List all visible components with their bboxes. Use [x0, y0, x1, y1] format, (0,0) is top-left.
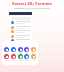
button[interactable]	[11, 47, 16, 54]
button[interactable]	[24, 54, 29, 61]
button[interactable]	[24, 47, 29, 54]
button[interactable]	[18, 47, 23, 54]
staticText: including RAR, ZIP, 7Z and more	[14, 6, 50, 9]
button[interactable]	[31, 47, 36, 54]
staticText: Extract 20+ Formats	[12, 1, 52, 6]
button[interactable]	[4, 47, 9, 54]
button[interactable]	[31, 54, 36, 61]
button[interactable]	[4, 54, 9, 61]
button[interactable]	[18, 54, 23, 61]
button[interactable]	[11, 54, 16, 61]
